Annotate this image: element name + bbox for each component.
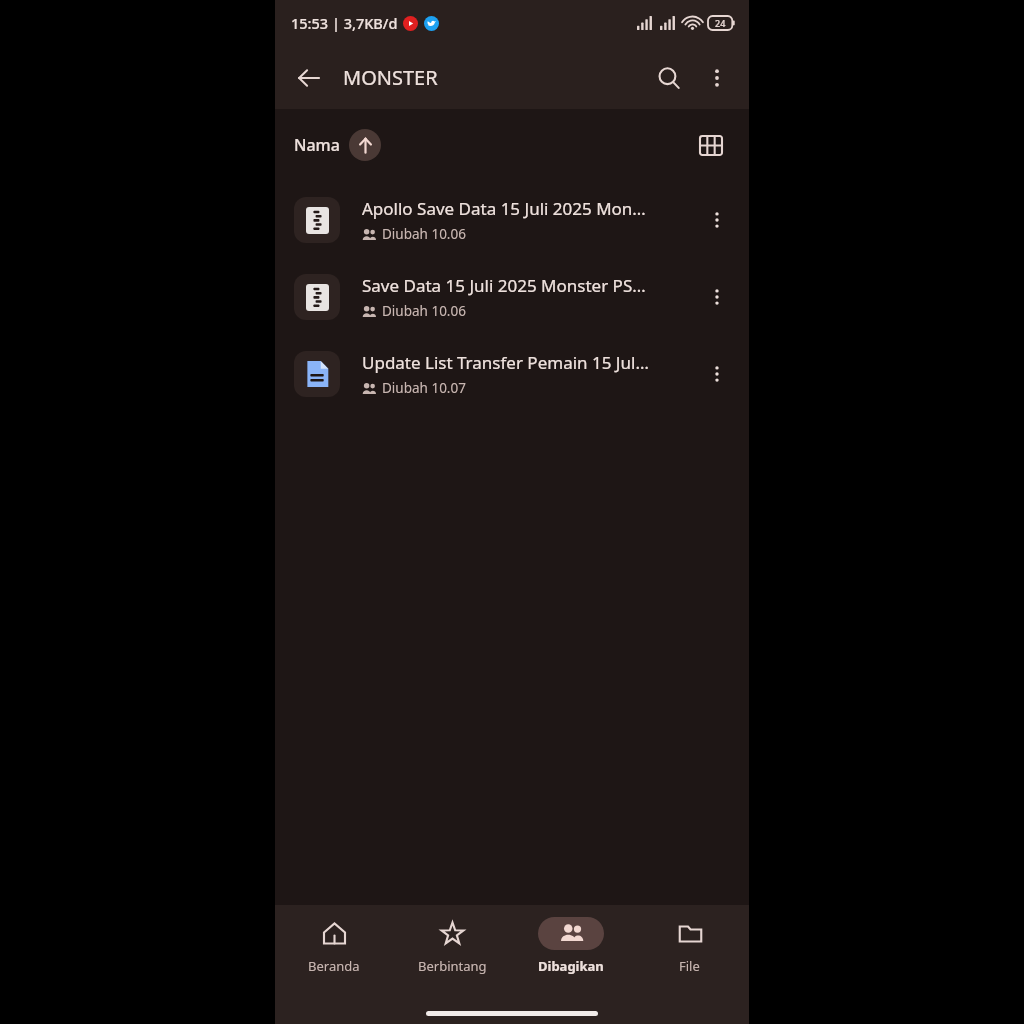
staticText: Berbintang	[418, 957, 487, 975]
staticText: 24	[715, 17, 726, 29]
staticText: Diubah 10.06	[382, 225, 466, 243]
button[interactable]: Grid view	[689, 123, 733, 167]
staticText: File	[679, 957, 700, 975]
button[interactable]: Search	[645, 54, 693, 102]
staticText: Update List Transfer Pemain 15 Jul…	[362, 351, 649, 374]
staticText: Beranda	[308, 957, 360, 975]
button[interactable]: Update List Transfer Pemain 15 Jul…	[275, 335, 749, 412]
button[interactable]: Back	[285, 54, 333, 102]
staticText: MONSTER	[343, 64, 438, 91]
button[interactable]: Save Data 15 Juli 2025 Monster PS…	[275, 258, 749, 335]
staticText: Diubah 10.06	[382, 302, 466, 320]
staticText: Save Data 15 Juli 2025 Monster PS…	[362, 274, 646, 297]
button[interactable]: Apollo Save Data 15 Juli 2025 Mon…	[275, 181, 749, 258]
button[interactable]: More options	[695, 352, 739, 396]
button[interactable]: More options	[695, 198, 739, 242]
button[interactable]: Berbintang	[393, 917, 511, 1002]
staticText: Diubah 10.07	[382, 379, 466, 397]
button[interactable]: Dibagikan	[511, 917, 630, 1002]
button[interactable]: Beranda	[275, 917, 393, 1002]
staticText: 15:53 | 3,7KB/d	[291, 13, 398, 33]
staticText: Apollo Save Data 15 Juli 2025 Mon…	[362, 197, 646, 220]
button[interactable]: More options	[693, 54, 741, 102]
staticText: Dibagikan	[538, 957, 604, 975]
button[interactable]: More options	[695, 275, 739, 319]
button[interactable]: File	[630, 917, 749, 1002]
button[interactable]: Nama	[294, 129, 383, 161]
staticText: Nama	[294, 134, 340, 156]
